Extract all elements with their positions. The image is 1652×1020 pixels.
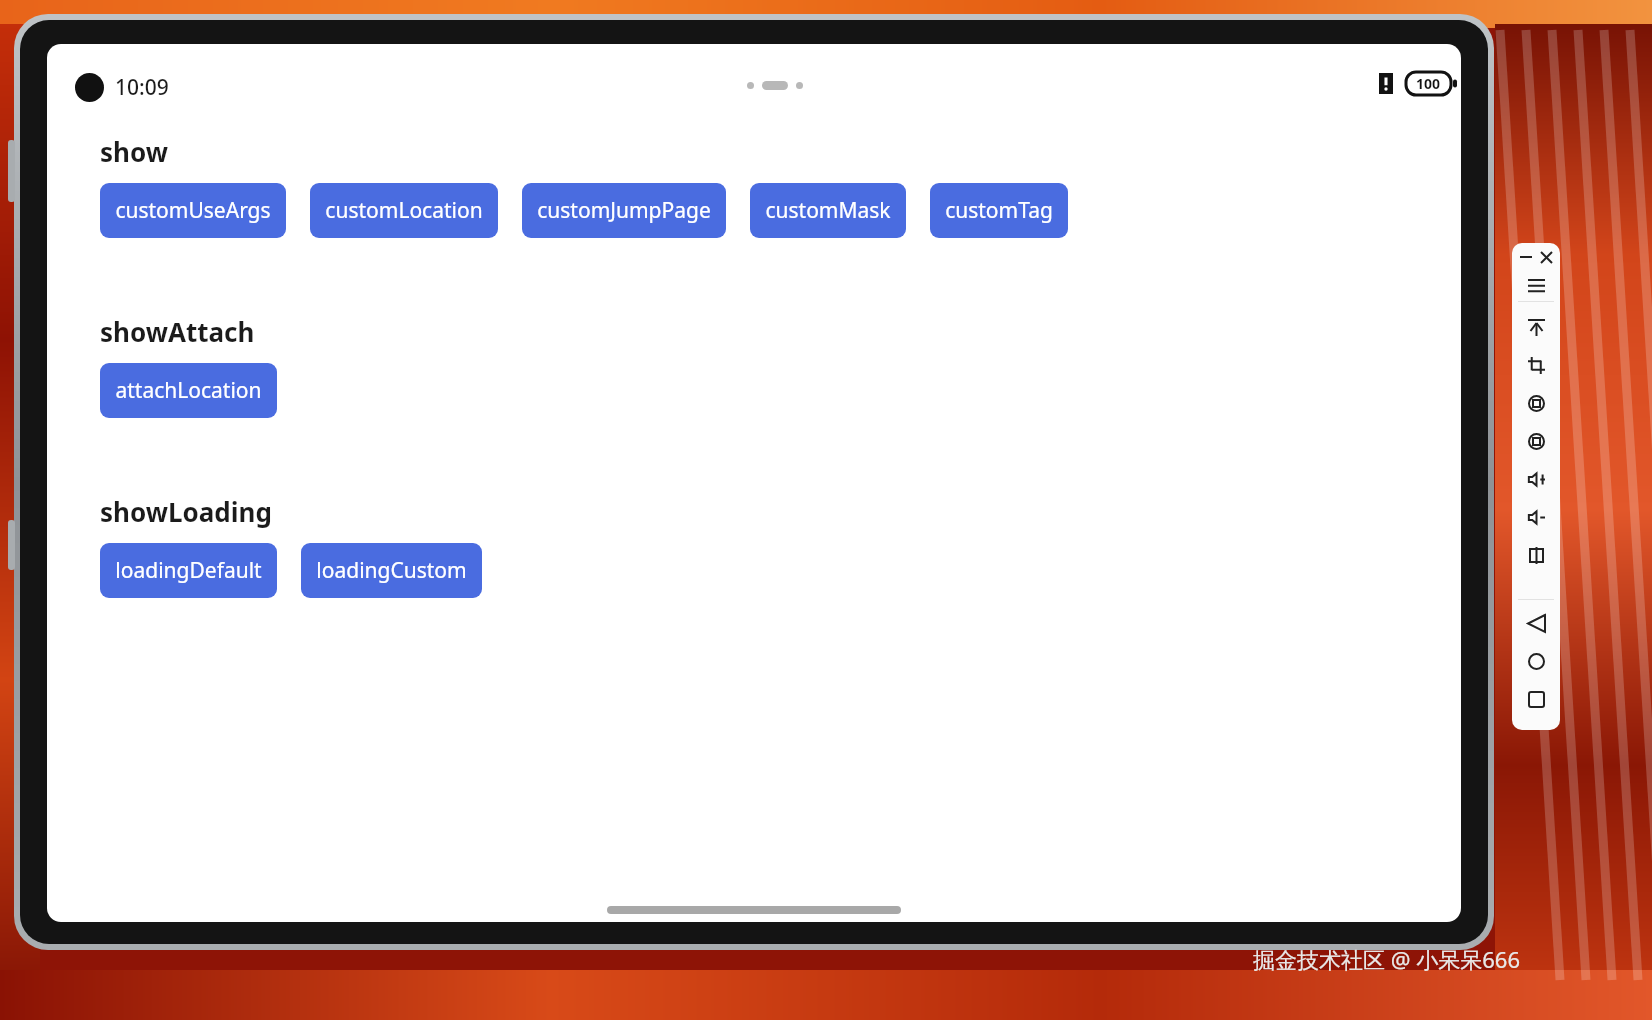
staticText: 100: [1416, 74, 1441, 93]
staticText: 掘金技术社区 @ 小呆呆666: [1253, 944, 1520, 974]
button[interactable]: customLocation: [310, 183, 498, 238]
button[interactable]: customTag: [930, 183, 1068, 238]
staticText: customTag: [945, 196, 1053, 225]
button[interactable]: Rotate right: [1522, 427, 1550, 455]
button[interactable]: customJumpPage: [522, 183, 726, 238]
staticText: showAttach: [100, 314, 255, 349]
button[interactable]: Fold: [1522, 541, 1550, 569]
staticText: 10:09: [115, 73, 169, 102]
button[interactable]: customUseArgs: [100, 183, 286, 238]
button[interactable]: Recents: [1522, 685, 1550, 713]
button[interactable]: Rotate left: [1522, 389, 1550, 417]
button[interactable]: customMask: [750, 183, 906, 238]
button[interactable]: attachLocation: [100, 363, 277, 418]
staticText: show: [100, 134, 168, 169]
staticText: attachLocation: [115, 376, 262, 405]
button[interactable]: Minimize: [1516, 247, 1536, 267]
staticText: showLoading: [100, 494, 272, 529]
button[interactable]: Back: [1522, 609, 1550, 637]
button[interactable]: loadingDefault: [100, 543, 277, 598]
staticText: customMask: [765, 196, 891, 225]
button[interactable]: Upload: [1522, 313, 1550, 341]
button[interactable]: Volume down: [1522, 503, 1550, 531]
staticText: customJumpPage: [537, 196, 711, 225]
button[interactable]: Crop: [1522, 351, 1550, 379]
staticText: loadingDefault: [115, 556, 262, 585]
button[interactable]: Menu: [1522, 273, 1550, 301]
button[interactable]: loadingCustom: [301, 543, 482, 598]
button[interactable]: Home: [1522, 647, 1550, 675]
button[interactable]: Close: [1536, 247, 1556, 267]
button[interactable]: Volume up: [1522, 465, 1550, 493]
staticText: customLocation: [325, 196, 483, 225]
staticText: loadingCustom: [316, 556, 467, 585]
staticText: customUseArgs: [115, 196, 271, 225]
